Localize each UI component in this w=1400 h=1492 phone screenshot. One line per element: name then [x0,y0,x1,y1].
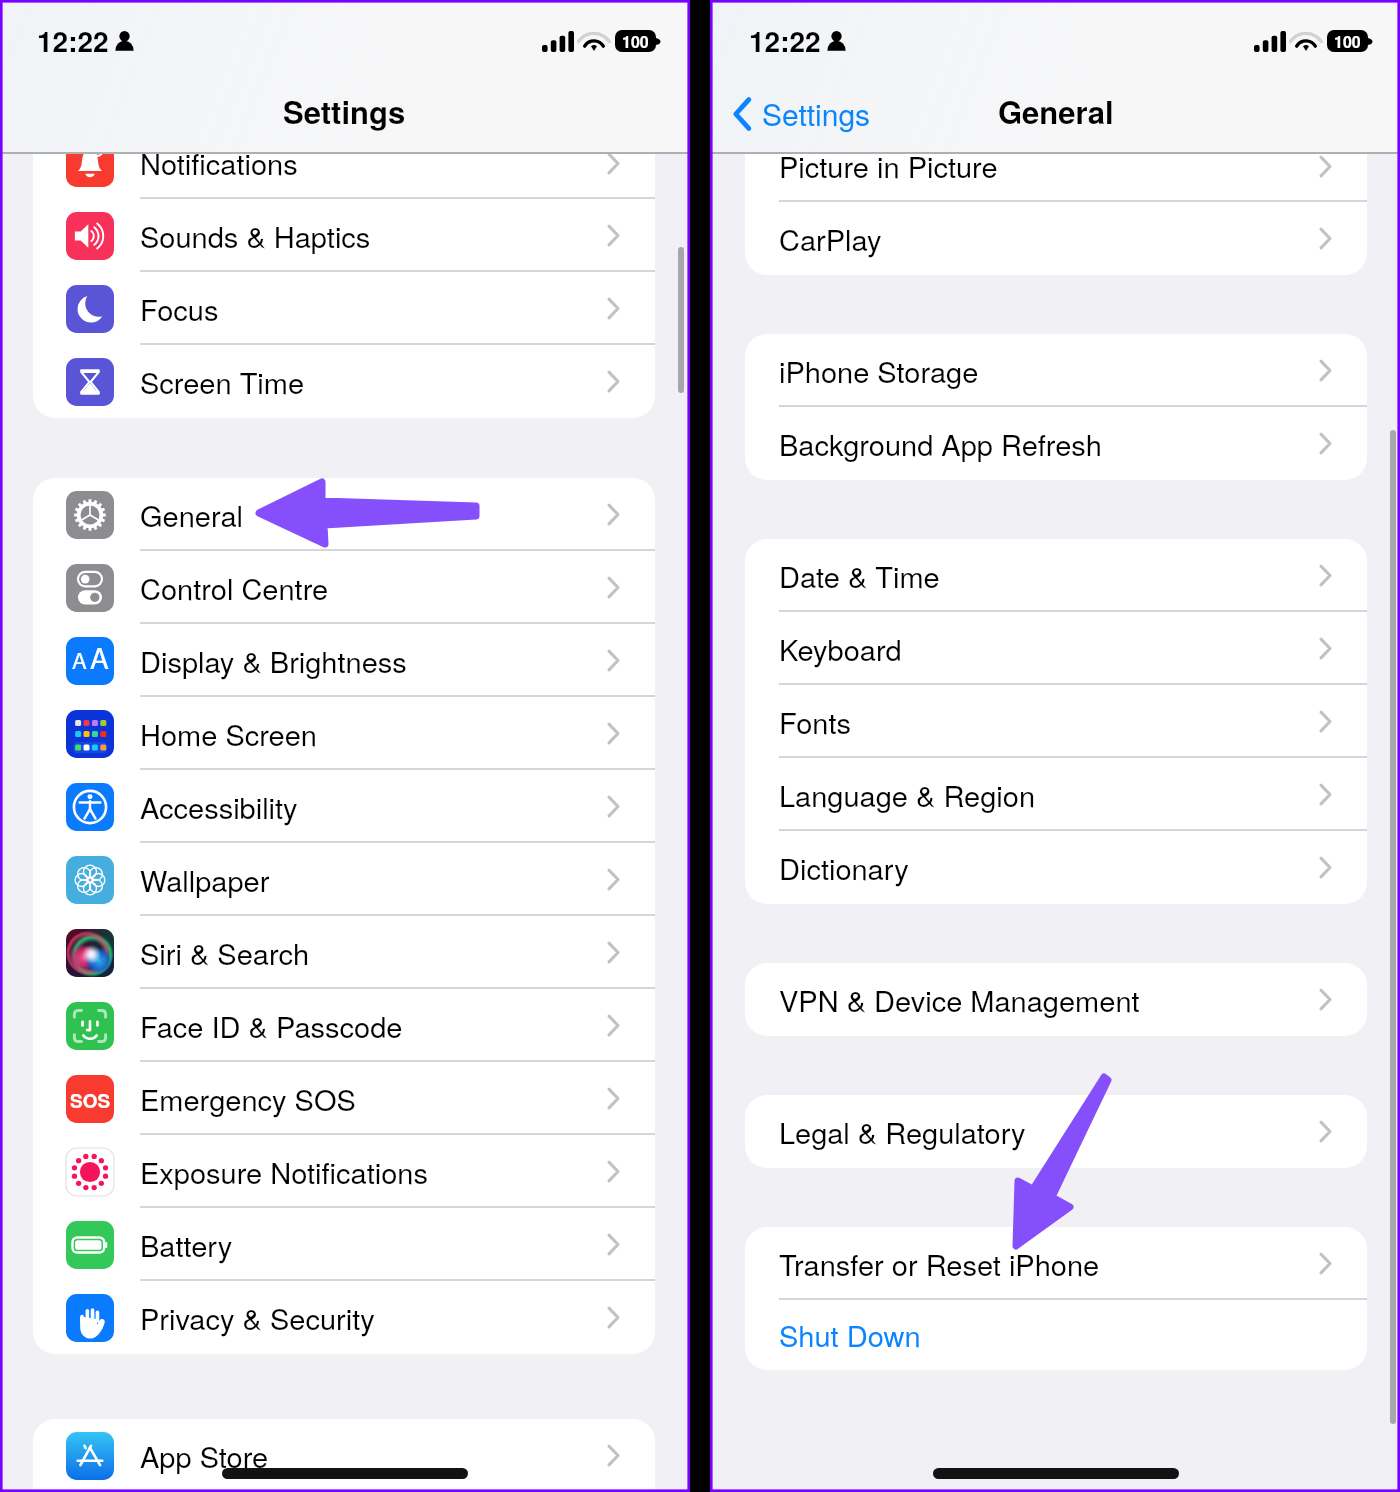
button[interactable]: Picture in Picture [745,154,1367,202]
button[interactable]: Shut Down [745,1300,1367,1370]
staticText: Battery [140,1224,233,1266]
button[interactable]: Battery [33,1208,655,1281]
staticText: VPN & Device Management [779,979,1140,1021]
staticText: Face ID & Passcode [140,1005,403,1047]
button[interactable]: Home Screen [33,697,655,770]
staticText: Display & Brightness [140,640,407,682]
button[interactable]: Exposure Notifications [33,1135,655,1208]
button[interactable]: VPN & Device Management [745,963,1367,1036]
button[interactable]: Date & Time [745,539,1367,612]
button[interactable]: Fonts [745,685,1367,758]
button[interactable]: Control Centre [33,551,655,624]
staticText: Wallpaper [140,859,270,901]
staticText: 100 [622,30,649,52]
staticText: Picture in Picture [779,154,998,187]
staticText: Focus [140,288,219,330]
staticText: Language & Region [779,774,1036,816]
button[interactable]: SOS [33,1062,655,1135]
staticText: Background App Refresh [779,423,1102,465]
button[interactable]: Privacy & Security [33,1281,655,1354]
button[interactable]: A [33,624,655,697]
staticText: General [140,494,244,536]
button[interactable]: Siri & Search [33,916,655,989]
staticText: Siri & Search [140,932,310,974]
button[interactable]: Back to Settings [732,92,871,135]
staticText: A [72,644,87,676]
button[interactable]: Legal & Regulatory [745,1095,1367,1168]
button[interactable]: App Store [33,1419,655,1492]
button[interactable]: Wallpaper [33,843,655,916]
staticText: Notifications [140,154,298,184]
button[interactable]: iPhone Storage [745,334,1367,407]
staticText: Date & Time [779,555,940,597]
button[interactable]: CarPlay [745,202,1367,275]
staticText: App Store [140,1435,269,1477]
button[interactable]: Background App Refresh [745,407,1367,480]
staticText: Fonts [779,701,851,743]
staticText: SOS [70,1087,111,1114]
staticText: Dictionary [779,847,909,889]
staticText: Sounds & Haptics [140,215,371,257]
button[interactable]: Dictionary [745,831,1367,904]
staticText: Emergency SOS [140,1078,356,1120]
staticText: Legal & Regulatory [779,1111,1026,1153]
button[interactable]: Focus [33,272,655,345]
staticText: Shut Down [779,1314,921,1356]
button[interactable]: Notifications [33,154,655,199]
staticText: Transfer or Reset iPhone [779,1243,1100,1285]
button[interactable]: Language & Region [745,758,1367,831]
staticText: Settings [762,92,871,135]
staticText: 12:22 [37,20,109,60]
button[interactable]: General [33,478,655,551]
staticText: Exposure Notifications [140,1151,428,1193]
staticText: Home Screen [140,713,317,755]
staticText: iPhone Storage [779,350,979,392]
button[interactable]: Screen Time [33,345,655,418]
staticText: 100 [1334,30,1361,52]
staticText: General [998,89,1114,133]
staticText: Settings [283,89,406,133]
staticText: Keyboard [779,628,902,670]
button[interactable]: Face ID & Passcode [33,989,655,1062]
staticText: Accessibility [140,786,298,828]
staticText: 12:22 [749,20,821,60]
button[interactable]: Accessibility [33,770,655,843]
button[interactable]: Transfer or Reset iPhone [745,1227,1367,1300]
button[interactable]: Sounds & Haptics [33,199,655,272]
staticText: A [90,637,109,677]
staticText: CarPlay [779,218,882,260]
staticText: Screen Time [140,361,305,403]
staticText: Privacy & Security [140,1297,375,1339]
button[interactable]: Keyboard [745,612,1367,685]
staticText: Control Centre [140,567,329,609]
